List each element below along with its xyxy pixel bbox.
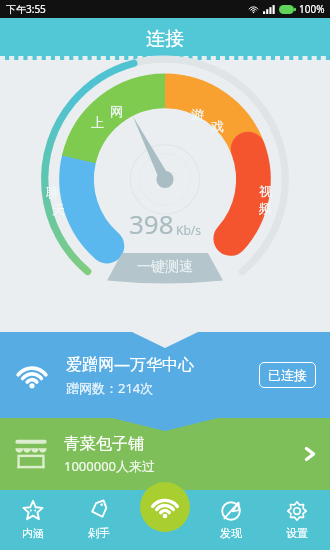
staticText: 频	[259, 200, 272, 216]
staticText: 一键测速	[137, 258, 193, 276]
button[interactable]: 爱蹭网—万华中心	[0, 332, 330, 418]
button[interactable]: 内涵	[0, 490, 66, 550]
staticText: 1000000人来过	[64, 457, 156, 475]
staticText: 网	[110, 103, 123, 119]
staticText: Kb/s	[176, 222, 202, 238]
staticText: 下午3:55	[6, 2, 46, 16]
staticText: 爱蹭网—万华中心	[66, 353, 195, 375]
button[interactable]: 发现	[198, 490, 264, 550]
staticText: 蹭网数：214次	[66, 379, 154, 397]
staticText: 设置	[286, 526, 308, 540]
staticText: 398	[129, 206, 174, 241]
staticText: 青菜包子铺	[64, 434, 144, 454]
staticText: 戏	[211, 118, 224, 134]
button[interactable]: WiFi	[140, 482, 190, 532]
button[interactable]: 一键测速	[107, 253, 223, 283]
staticText: 100%	[299, 2, 325, 16]
staticText: 游	[191, 106, 204, 122]
button[interactable]: 设置	[264, 490, 330, 550]
staticText: 发现	[220, 526, 242, 540]
staticText: 上	[91, 114, 104, 130]
button[interactable]: 剁手	[66, 490, 132, 550]
staticText: 连接	[146, 27, 184, 51]
staticText: 已连接	[268, 367, 307, 383]
button[interactable]: 已连接	[268, 367, 307, 383]
staticText: 天	[52, 201, 65, 217]
staticText: 剁手	[88, 526, 110, 540]
staticText: 视	[259, 183, 272, 199]
staticText: 内涵	[22, 526, 44, 540]
staticText: 聊	[46, 184, 59, 200]
button[interactable]: 青菜包子铺	[0, 418, 330, 490]
